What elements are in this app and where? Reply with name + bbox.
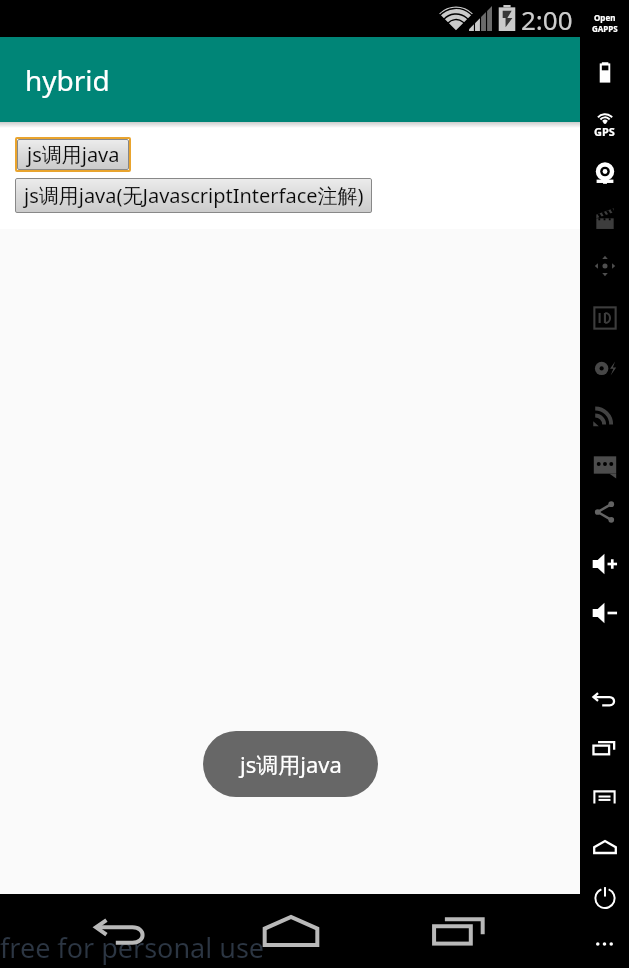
- staticText: js调用java: [240, 749, 342, 779]
- button[interactable]: Device: [593, 61, 617, 85]
- staticText: js调用java(无JavascriptInterface注解): [24, 182, 364, 209]
- button[interactable]: Back: [78, 908, 164, 954]
- staticText: hybrid: [25, 61, 110, 99]
- button[interactable]: js调用java: [203, 731, 378, 797]
- button[interactable]: js调用java(无JavascriptInterface注解): [15, 178, 372, 213]
- button[interactable]: Share: [592, 499, 618, 525]
- button[interactable]: js调用java: [17, 139, 129, 170]
- button[interactable]: Power: [594, 886, 616, 908]
- button[interactable]: More: [594, 941, 615, 947]
- button[interactable]: Record: [591, 206, 619, 234]
- staticText: GPS: [594, 124, 615, 139]
- button[interactable]: ID: [591, 304, 619, 332]
- button[interactable]: Move: [591, 252, 619, 280]
- button[interactable]: Open GAPPS: [592, 12, 618, 34]
- button[interactable]: Recents: [593, 741, 616, 755]
- button[interactable]: GPS: [594, 111, 615, 139]
- staticText: js调用java: [27, 141, 120, 168]
- button[interactable]: Disc: [591, 353, 619, 381]
- button[interactable]: Volume up: [591, 550, 619, 578]
- button[interactable]: Back: [593, 692, 616, 706]
- button[interactable]: Home: [248, 906, 334, 956]
- staticText: GAPPS: [592, 23, 618, 34]
- button[interactable]: Recents: [417, 907, 503, 955]
- staticText: Open: [594, 12, 616, 23]
- button[interactable]: Menu: [593, 790, 616, 804]
- button[interactable]: Network: [591, 402, 619, 430]
- button[interactable]: Messages: [591, 451, 619, 479]
- staticText: 2:00: [521, 2, 573, 37]
- button[interactable]: Home: [593, 840, 617, 854]
- button[interactable]: Camera: [591, 160, 619, 188]
- button[interactable]: Volume down: [591, 599, 619, 627]
- staticText: free for personal use: [0, 929, 265, 966]
